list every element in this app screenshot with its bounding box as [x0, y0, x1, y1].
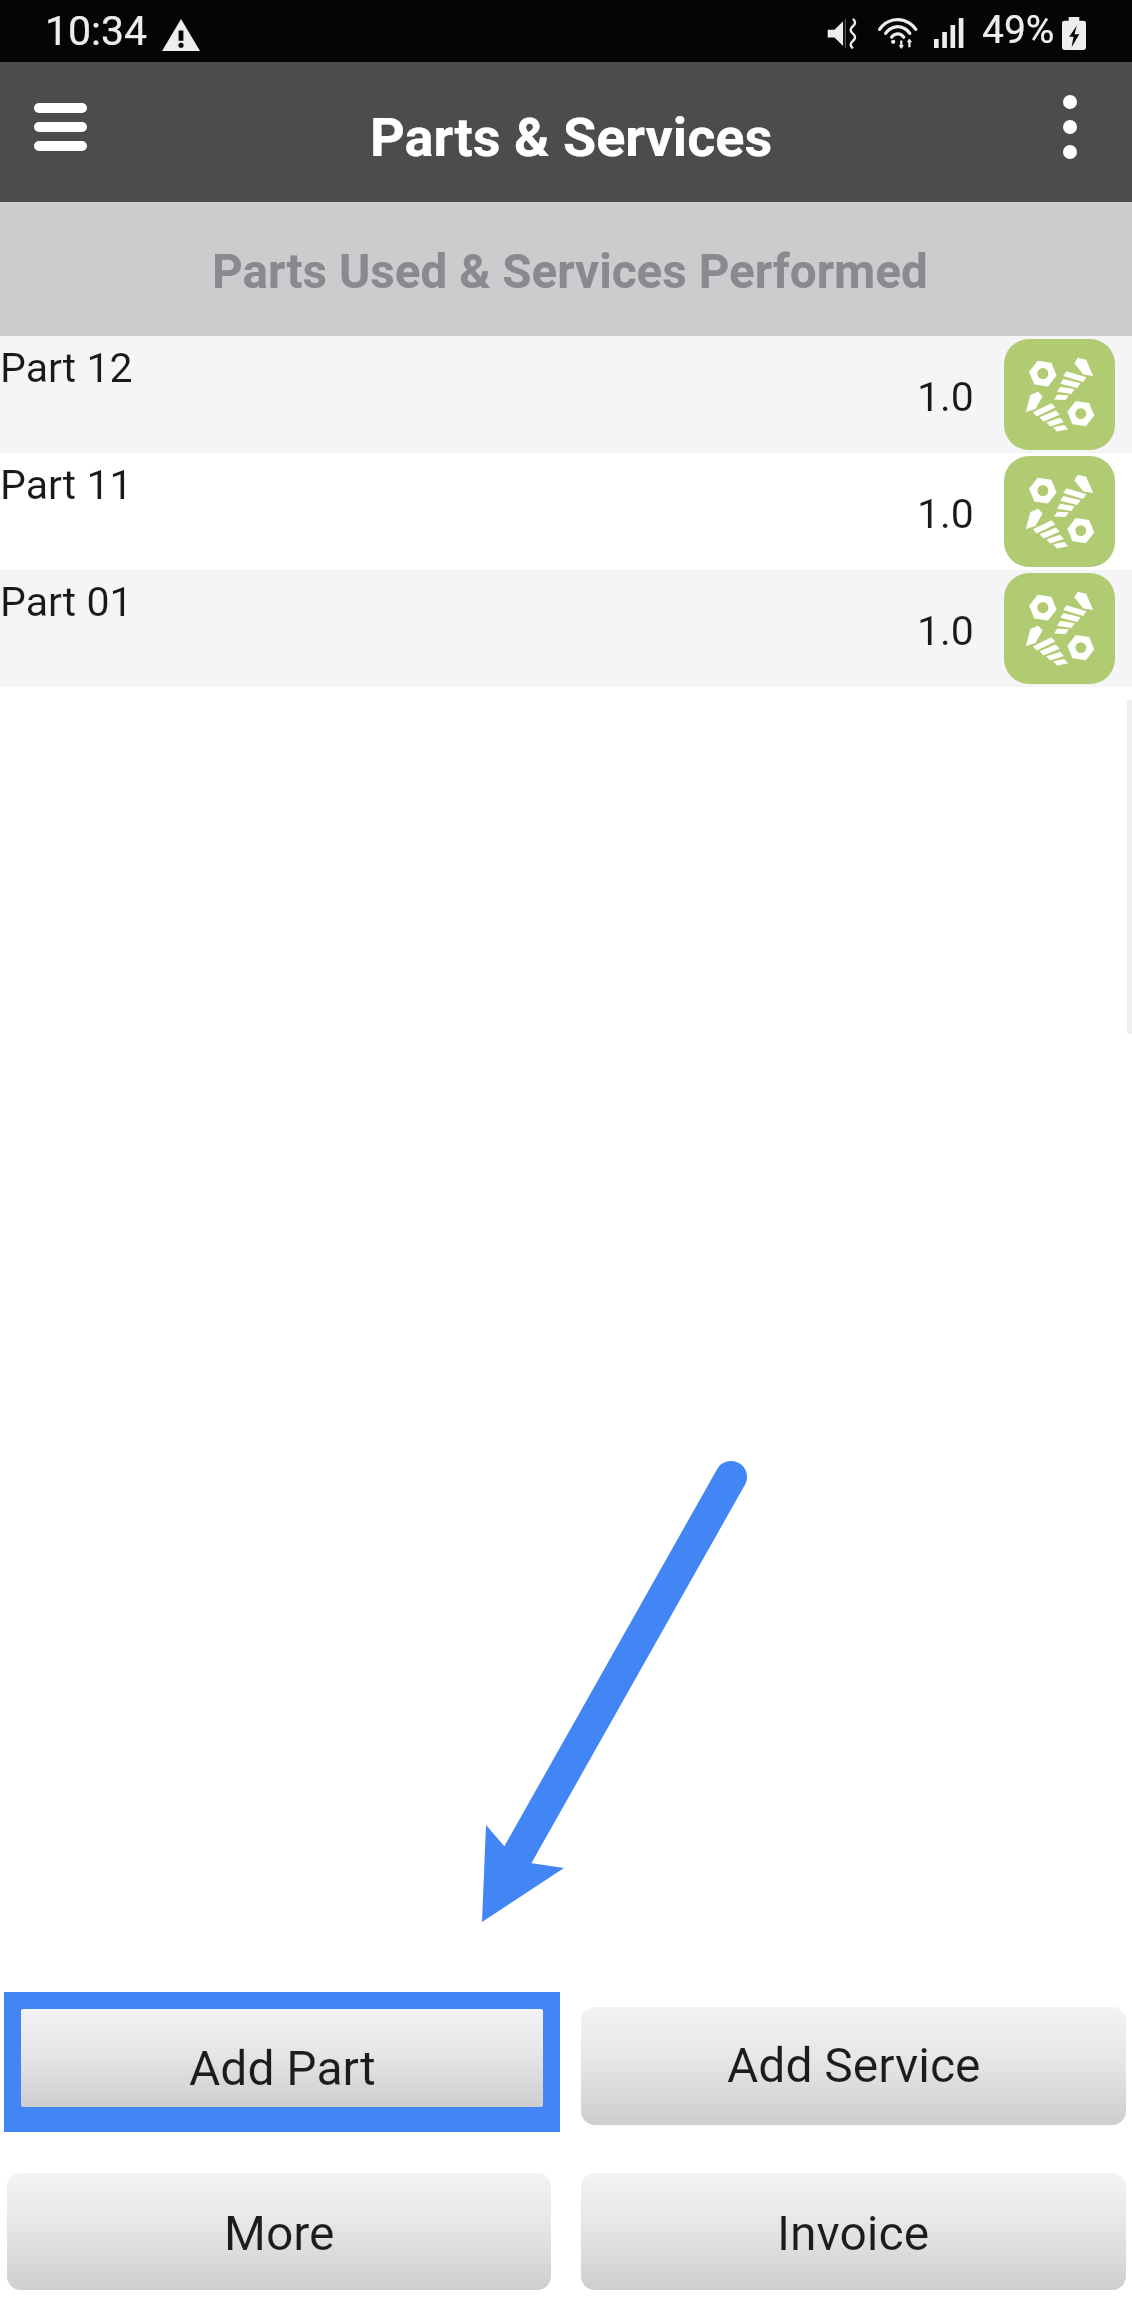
button[interactable]: Open navigation menu [0, 62, 120, 202]
staticText: 10:34 [45, 7, 148, 55]
button[interactable]: More [7, 2173, 551, 2290]
button[interactable]: Part 01 [0, 570, 1132, 687]
button[interactable]: Add Part [21, 2009, 543, 2107]
staticText: Parts & Services [370, 106, 773, 169]
staticText: Part 12 [0, 344, 133, 392]
button[interactable]: Part 12 [0, 336, 1132, 453]
staticText: Parts Used & Services Performed [212, 244, 928, 300]
button[interactable]: More options [1008, 62, 1132, 202]
staticText: 49% [982, 7, 1055, 53]
staticText: Part 11 [0, 461, 133, 509]
staticText: Part 01 [0, 578, 133, 626]
staticText: Add Service [727, 2037, 981, 2093]
staticText: 1.0 [917, 373, 974, 421]
staticText: 1.0 [917, 607, 974, 655]
button[interactable]: Add Service [581, 2007, 1126, 2125]
button[interactable]: Part 11 [0, 453, 1132, 570]
staticText: Invoice [777, 2205, 930, 2261]
staticText: Add Part [189, 2040, 376, 2096]
button[interactable]: Invoice [581, 2173, 1126, 2290]
staticText: More [224, 2205, 335, 2261]
staticText: 1.0 [917, 490, 974, 538]
